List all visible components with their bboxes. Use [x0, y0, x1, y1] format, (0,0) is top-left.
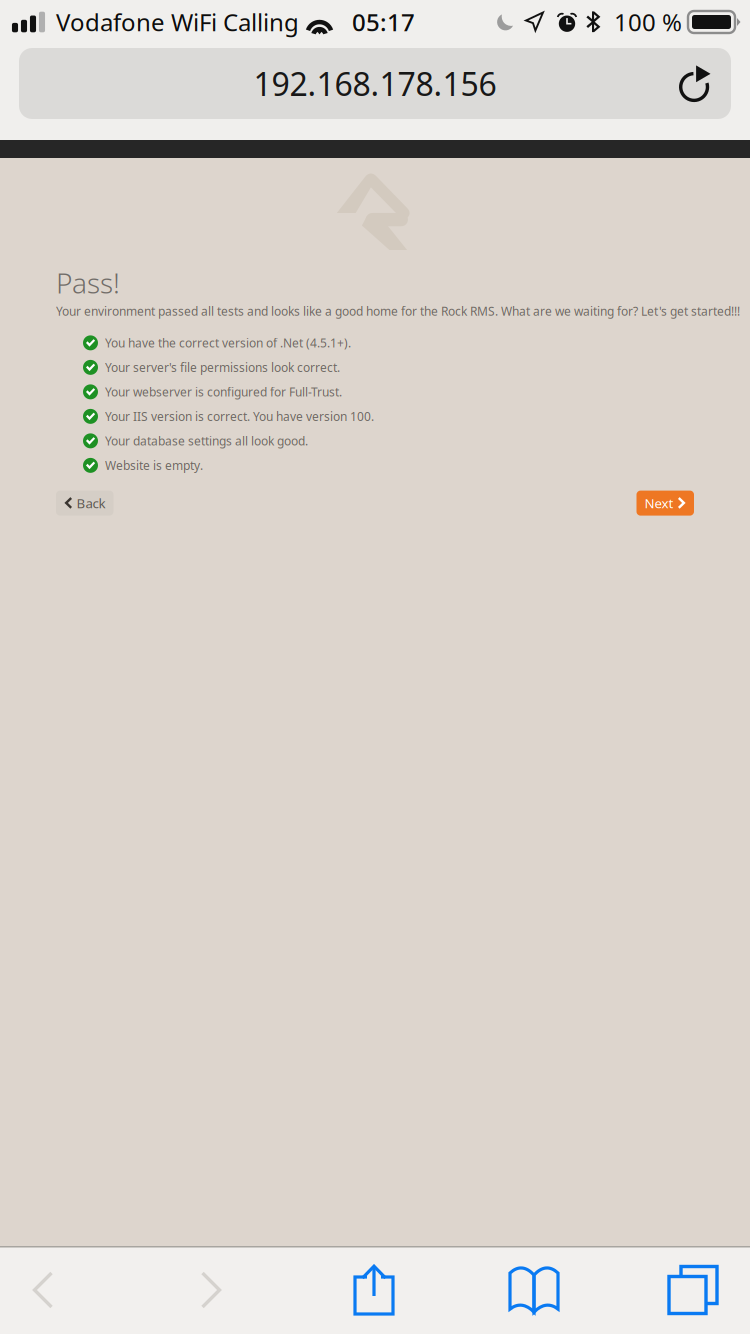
button[interactable]: Next	[636, 491, 694, 516]
staticText: Vodafone WiFi Calling	[56, 6, 299, 38]
button[interactable]: Forward	[168, 1246, 254, 1334]
button[interactable]: Back	[56, 491, 113, 516]
staticText: Website is empty.	[105, 457, 203, 473]
staticText: Your IIS version is correct. You have ve…	[105, 408, 374, 424]
staticText: Pass!	[56, 264, 120, 301]
staticText: Your environment passed all tests and lo…	[56, 303, 740, 319]
staticText: 05:17	[352, 6, 415, 38]
staticText: Your server's file permissions look corr…	[105, 359, 340, 375]
button[interactable]: Reload	[669, 54, 723, 112]
staticText: 192.168.178.156	[253, 62, 496, 105]
staticText: Your database settings all look good.	[105, 433, 308, 449]
staticText: Back	[76, 494, 105, 512]
staticText: Your webserver is configured for Full-Tr…	[105, 384, 342, 400]
button[interactable]: Tabs	[650, 1246, 736, 1334]
button[interactable]: Bookmarks	[491, 1246, 577, 1334]
staticText: 100 %	[614, 6, 682, 38]
staticText: Next	[644, 494, 673, 512]
button[interactable]: Back	[0, 1246, 86, 1334]
button[interactable]: Share	[331, 1246, 417, 1334]
staticText: You have the correct version of .Net (4.…	[105, 335, 351, 351]
